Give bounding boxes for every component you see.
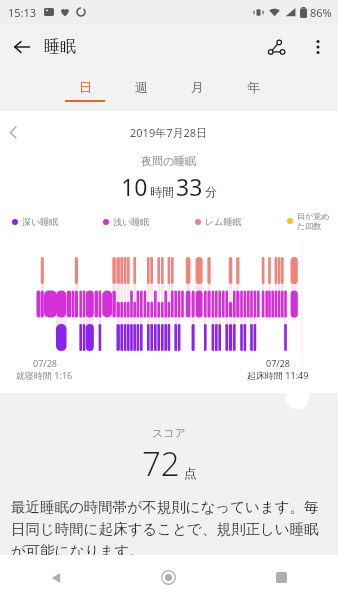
staticText: 週 bbox=[135, 79, 148, 95]
button[interactable]: Recents bbox=[225, 555, 338, 600]
button[interactable]: 年 bbox=[225, 69, 281, 111]
button[interactable]: 日 bbox=[57, 69, 113, 111]
staticText: 日 bbox=[79, 79, 92, 95]
staticText: 分 bbox=[205, 184, 217, 199]
button[interactable]: More options bbox=[298, 27, 338, 67]
staticText: 07/28 bbox=[266, 357, 290, 369]
staticText: 深い睡眠 bbox=[22, 216, 59, 227]
staticText: 月 bbox=[191, 79, 204, 95]
staticText: 最近睡眠の時間帯が不規則になっています。毎日同じ時間に起床することで、規則正しい… bbox=[11, 498, 327, 555]
staticText: 時間 bbox=[150, 184, 174, 199]
staticText: 10 bbox=[121, 171, 148, 202]
button[interactable]: 月 bbox=[169, 69, 225, 111]
staticText: 86% bbox=[310, 5, 332, 20]
staticText: 起床時間 11:49 bbox=[247, 369, 309, 381]
staticText: 2019年7月28日 bbox=[130, 125, 208, 140]
button[interactable]: Share bbox=[254, 25, 298, 69]
staticText: 72 bbox=[142, 441, 180, 486]
button[interactable]: 週 bbox=[113, 69, 169, 111]
staticText: 浅い睡眠 bbox=[113, 216, 150, 227]
staticText: 33 bbox=[176, 171, 203, 202]
staticText: た回数 bbox=[297, 221, 322, 231]
button[interactable]: Add sleep record bbox=[286, 386, 309, 409]
button[interactable]: Home bbox=[112, 555, 225, 600]
staticText: 夜間の睡眠 bbox=[141, 154, 197, 168]
staticText: 15:13 bbox=[8, 5, 37, 20]
staticText: 目が覚め bbox=[297, 211, 330, 221]
staticText: レム睡眠 bbox=[205, 216, 242, 227]
staticText: 年 bbox=[247, 79, 260, 95]
button[interactable]: Back bbox=[0, 25, 44, 69]
staticText: 点 bbox=[184, 465, 197, 481]
staticText: スコア bbox=[152, 426, 186, 440]
staticText: 睡眠 bbox=[44, 37, 76, 57]
staticText: 就寝時間 1:16 bbox=[16, 369, 73, 381]
button[interactable]: Back bbox=[0, 555, 112, 600]
button[interactable]: Previous day bbox=[0, 119, 26, 145]
staticText: 07/28 bbox=[33, 357, 57, 369]
